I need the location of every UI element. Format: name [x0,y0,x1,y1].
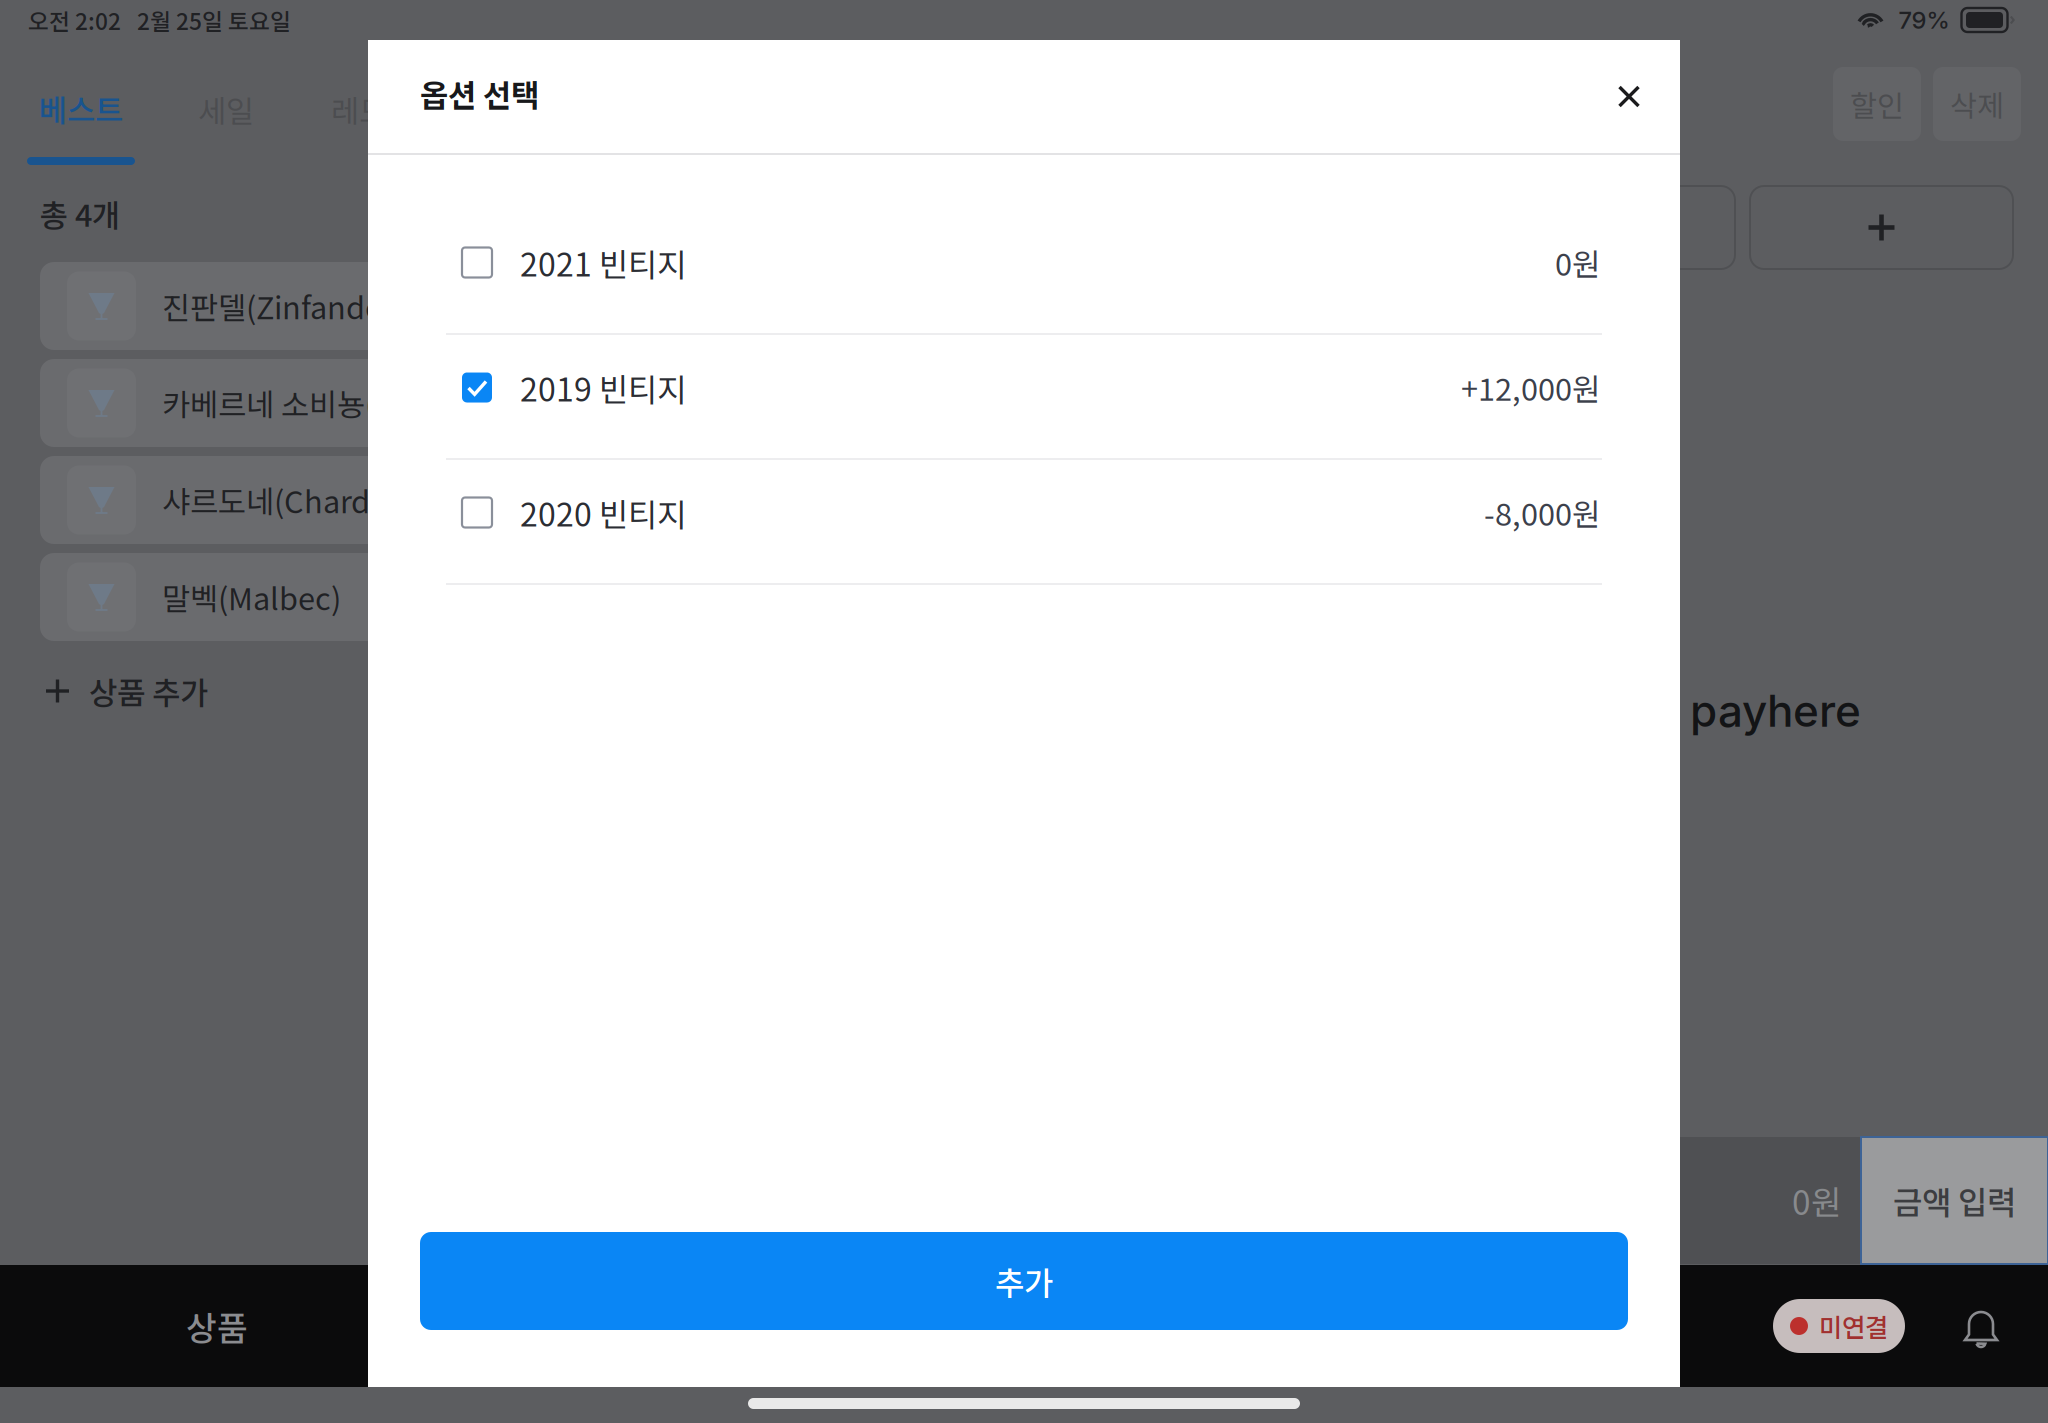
staticText: 2020 빈티지 [520,489,686,536]
staticText: 상품 [186,1302,248,1350]
button[interactable]: 베스트 [0,40,162,165]
staticText: +12,000원 [1461,365,1600,410]
button[interactable]: 2021 빈티지 [446,210,1602,335]
staticText: 0원 [1792,1176,1842,1225]
button[interactable]: 알림 [1961,1308,2001,1348]
button[interactable]: 카베르네 소비뇽(Cabernet) [40,359,740,447]
button[interactable]: 샤르도네(Chardonnay) [40,456,740,544]
staticText: 2021 빈티지 [520,239,686,286]
staticText: 옵션 선택 [420,71,539,116]
button[interactable]: 레드 [303,40,415,165]
button[interactable]: 상품 추가 [0,641,740,741]
button[interactable]: 진판델(Zinfandel) [40,262,740,350]
staticText: 총 4개 [40,191,120,236]
staticText: 진판델(Zinfandel) [162,284,401,328]
staticText: 0원 [1555,240,1600,285]
button[interactable]: 미연결 [1773,1299,1905,1353]
staticText: 삭제 [1950,83,2004,125]
button[interactable]: 삭제 [1933,67,2021,141]
staticText: 2월 25일 토요일 [137,4,291,36]
staticText: 미연결 [1819,1308,1888,1344]
button[interactable]: 상품 [33,1265,401,1387]
button[interactable]: 금액 입력 [1861,1137,2048,1264]
staticText: 오전 2:02 [28,4,121,36]
staticText: 2019 빈티지 [520,364,686,411]
staticText: 할인 [1850,83,1904,125]
button[interactable]: 2020 빈티지 [446,460,1602,585]
staticText: 말벡(Malbec) [162,575,341,619]
staticText: 레드 [331,87,387,132]
button[interactable]: 말벡(Malbec) [40,553,740,641]
staticText: payhere [1690,684,1861,737]
button[interactable]: 수량 추가 [1750,186,2013,269]
staticText: 베스트 [39,86,123,130]
button[interactable]: 2019 빈티지 [446,335,1602,460]
button[interactable]: 할인 [1833,67,1921,141]
button[interactable]: 닫기 [1603,70,1655,122]
staticText: 추가 [995,1258,1053,1304]
staticText: 79% [1898,5,1949,34]
staticText: 금액 입력 [1893,1177,2016,1224]
staticText: 카베르네 소비뇽(Cabernet) [162,381,518,425]
staticText: 샤르도네(Chardonnay) [162,478,470,522]
staticText: -8,000원 [1484,490,1600,535]
button[interactable]: 추가 [420,1232,1628,1330]
staticText: 상품 추가 [89,669,208,713]
staticText: 세일 [198,87,254,132]
